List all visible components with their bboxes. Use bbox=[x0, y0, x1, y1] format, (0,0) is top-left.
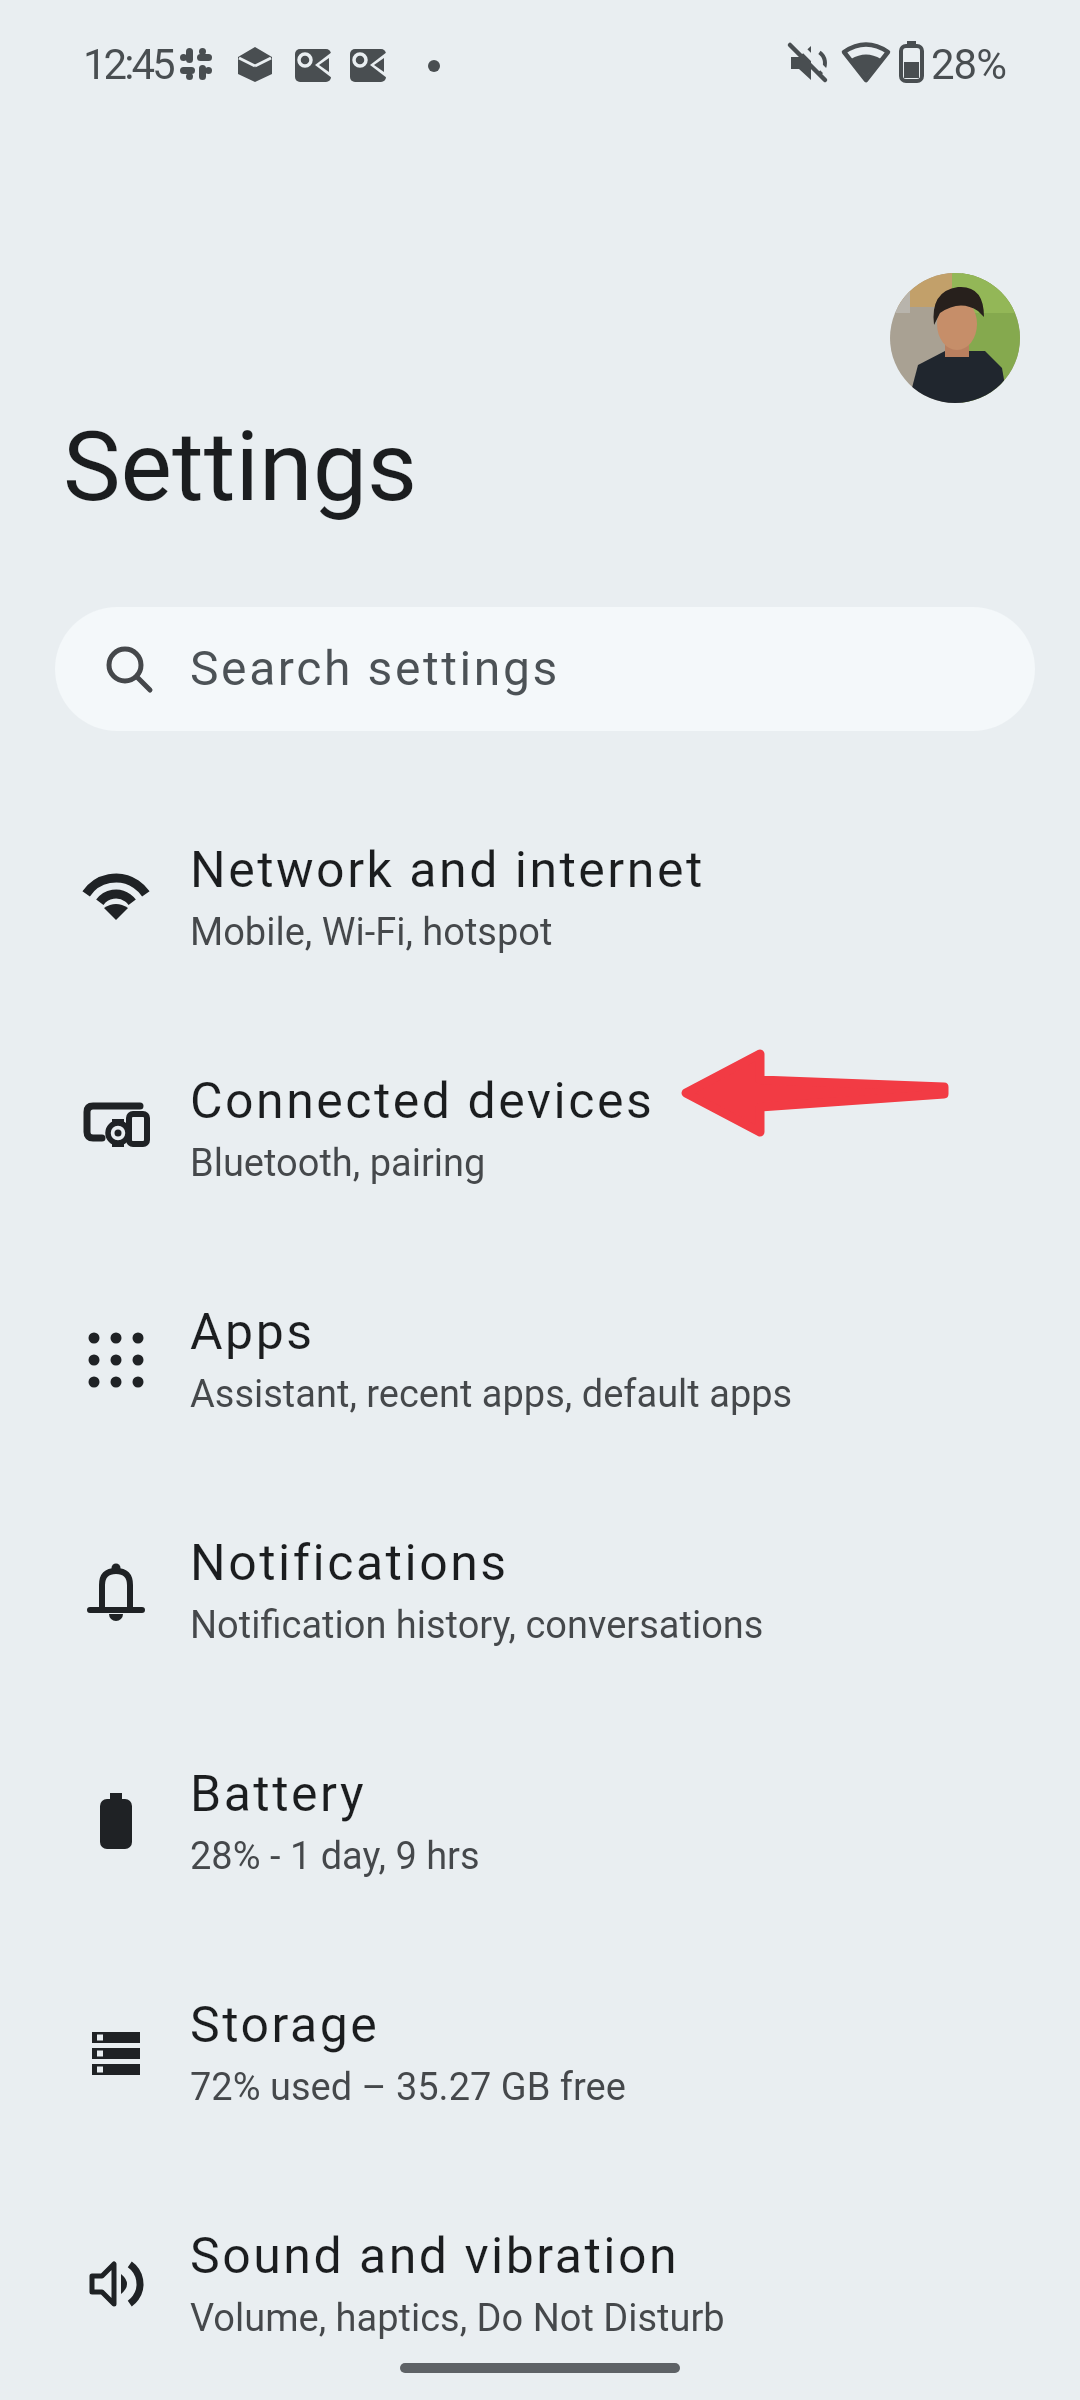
button[interactable]: Notifications bbox=[0, 1485, 1080, 1716]
staticText: Volume, haptics, Do Not Disturb bbox=[190, 2296, 725, 2341]
staticText: 72% used – 35.27 GB free bbox=[190, 2065, 626, 2110]
staticText: Connected devices bbox=[190, 1072, 655, 1131]
staticText: Apps bbox=[190, 1303, 315, 1362]
staticText: Notification history, conversations bbox=[190, 1603, 764, 1648]
staticText: Assistant, recent apps, default apps bbox=[190, 1372, 793, 1417]
button[interactable]: Connected devices bbox=[0, 1023, 1080, 1254]
button[interactable]: Network and internet bbox=[0, 792, 1080, 1023]
staticText: Settings bbox=[63, 410, 418, 524]
staticText: 12:45 bbox=[83, 40, 173, 89]
staticText: Storage bbox=[190, 1996, 380, 2055]
staticText: Notifications bbox=[190, 1534, 509, 1593]
button[interactable]: Storage bbox=[0, 1947, 1080, 2178]
staticText: Sound and vibration bbox=[190, 2227, 680, 2286]
button[interactable]: Sound and vibration bbox=[0, 2178, 1080, 2400]
button[interactable] bbox=[890, 273, 1020, 403]
staticText: 28% - 1 day, 9 hrs bbox=[190, 1834, 480, 1879]
staticText: 28% bbox=[931, 40, 1006, 89]
button[interactable]: Search settings bbox=[55, 607, 1035, 731]
staticText: Mobile, Wi-Fi, hotspot bbox=[190, 910, 553, 955]
staticText: Bluetooth, pairing bbox=[190, 1141, 486, 1186]
button[interactable]: Battery bbox=[0, 1716, 1080, 1947]
button[interactable]: Apps bbox=[0, 1254, 1080, 1485]
staticText: Search settings bbox=[190, 640, 560, 696]
staticText: Network and internet bbox=[190, 841, 705, 900]
staticText: Battery bbox=[190, 1765, 367, 1824]
